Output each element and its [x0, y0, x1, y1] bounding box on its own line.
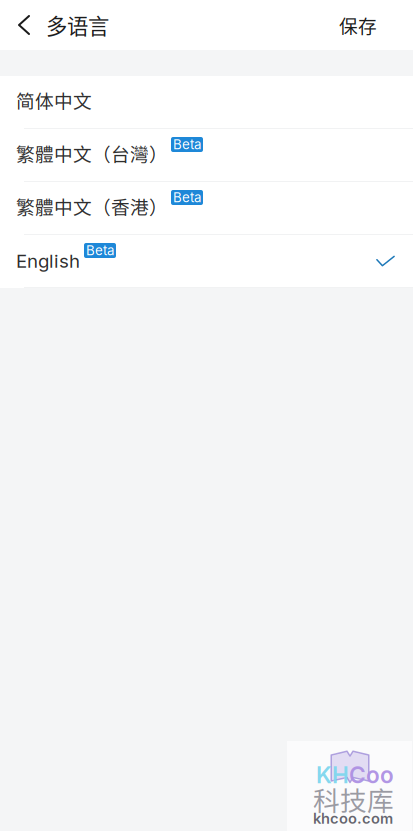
- staticText: English: [16, 250, 80, 272]
- staticText: 简体中文: [16, 86, 92, 113]
- staticText: 繁體中文（香港）: [16, 192, 168, 219]
- button[interactable]: 繁體中文（香港）: [0, 182, 413, 235]
- staticText: Beta: [173, 136, 201, 152]
- button[interactable]: Back: [0, 0, 46, 50]
- staticText: KH: [316, 761, 349, 789]
- button[interactable]: 繁體中文（台灣）: [0, 129, 413, 182]
- button[interactable]: 保存: [339, 0, 413, 50]
- staticText: Coo: [349, 761, 394, 789]
- button[interactable]: 简体中文: [0, 76, 413, 129]
- staticText: 多语言: [46, 10, 109, 40]
- staticText: 保存: [339, 11, 377, 38]
- button[interactable]: English: [0, 235, 413, 288]
- staticText: Beta: [86, 242, 114, 258]
- staticText: 繁體中文（台灣）: [16, 139, 168, 166]
- staticText: Beta: [173, 189, 201, 205]
- staticText: khcoo.com: [313, 810, 393, 827]
- staticText: 科技库: [313, 780, 394, 818]
